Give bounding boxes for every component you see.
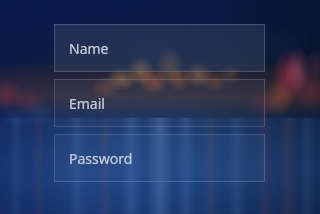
staticText: Email xyxy=(69,94,105,113)
staticText: Name xyxy=(69,39,109,58)
button[interactable]: Password xyxy=(54,134,265,182)
button[interactable]: Name xyxy=(54,24,265,72)
staticText: Password xyxy=(69,149,133,168)
button[interactable]: Email xyxy=(54,79,265,127)
